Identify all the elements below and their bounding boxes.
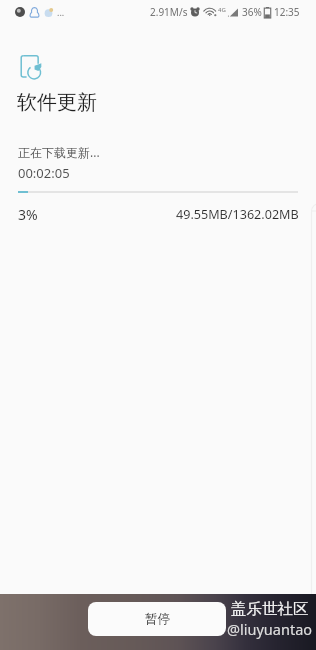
button[interactable]: 暂停 xyxy=(88,602,226,636)
staticText: 49.55MB/1362.02MB xyxy=(176,206,299,223)
staticText: 暂停 xyxy=(145,611,170,627)
staticText: 软件更新 xyxy=(17,90,97,115)
staticText: 3% xyxy=(18,205,38,224)
staticText: 36% xyxy=(242,5,262,19)
staticText: 4G xyxy=(218,6,226,14)
staticText: 正在下载更新... xyxy=(18,144,100,160)
staticText: ... xyxy=(57,6,65,18)
staticText: 00:02:05 xyxy=(18,164,70,182)
staticText: 盖乐世社区 xyxy=(231,599,309,619)
staticText: 12:35 xyxy=(274,5,300,19)
staticText: 2.91M/s xyxy=(150,5,188,19)
staticText: @liuyuantao xyxy=(227,619,313,639)
